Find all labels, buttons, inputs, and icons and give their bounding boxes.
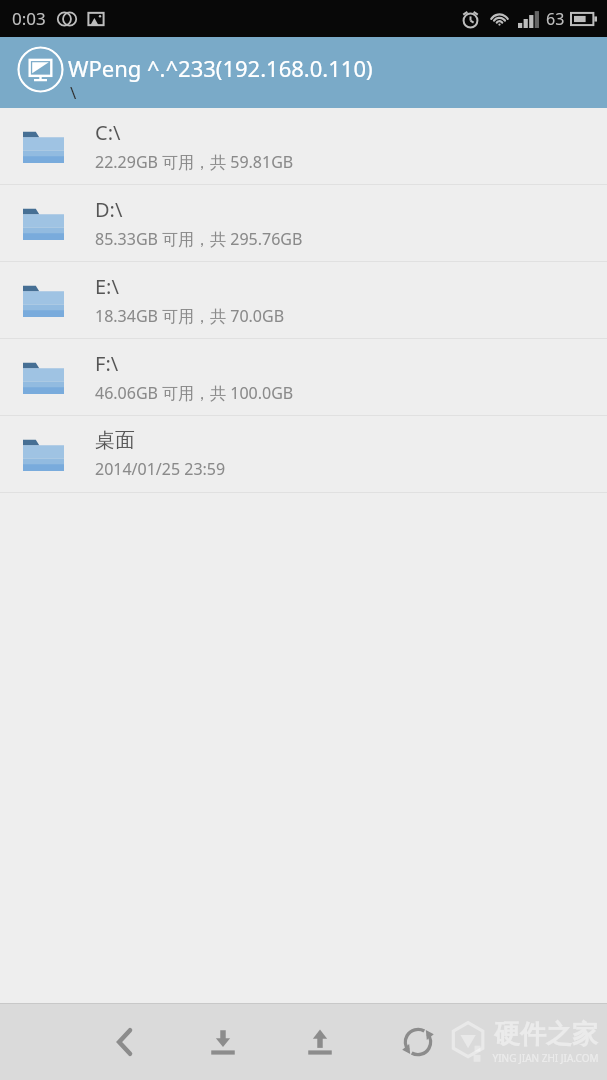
button[interactable]: Upload: [291, 1013, 349, 1071]
button[interactable]: Host: [0, 37, 607, 108]
button[interactable]: F:\: [0, 339, 607, 415]
staticText: 46.06GB 可用，共 100.0GB: [95, 382, 294, 404]
button[interactable]: Refresh: [389, 1013, 447, 1071]
button[interactable]: E:\: [0, 262, 607, 338]
staticText: E:\: [95, 273, 119, 300]
staticText: \: [70, 81, 77, 104]
staticText: 85.33GB 可用，共 295.76GB: [95, 228, 303, 250]
button[interactable]: Back: [96, 1013, 154, 1071]
button[interactable]: C:\: [0, 108, 607, 184]
button[interactable]: 桌面: [0, 416, 607, 492]
button[interactable]: D:\: [0, 185, 607, 261]
staticText: C:\: [95, 119, 121, 146]
staticText: YING JIAN ZHI JIA.COM: [492, 1051, 599, 1065]
staticText: 22.29GB 可用，共 59.81GB: [95, 151, 294, 173]
button[interactable]: Download: [194, 1013, 252, 1071]
staticText: D:\: [95, 196, 123, 223]
staticText: 0:03: [12, 7, 46, 30]
staticText: 63: [546, 8, 565, 30]
staticText: 18.34GB 可用，共 70.0GB: [95, 305, 285, 327]
other: Host: [17, 46, 64, 93]
staticText: 桌面: [95, 428, 135, 453]
staticText: 硬件之家: [494, 1018, 598, 1051]
staticText: F:\: [95, 350, 119, 377]
staticText: WPeng ^.^233(192.168.0.110): [68, 53, 373, 83]
staticText: 2014/01/25 23:59: [95, 458, 226, 480]
